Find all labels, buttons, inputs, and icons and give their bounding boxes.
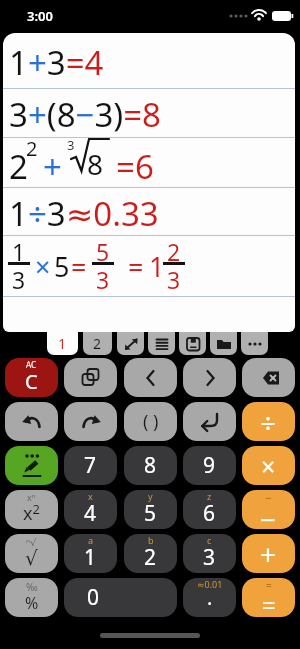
staticText: 1	[12, 236, 26, 262]
staticText: xⁿ	[27, 491, 36, 503]
staticText: x	[88, 490, 93, 502]
staticText: ×	[261, 449, 276, 483]
button[interactable]	[64, 402, 117, 441]
staticText: 1	[84, 543, 97, 570]
staticText: x2	[23, 500, 40, 525]
staticText: ‰	[26, 580, 38, 594]
button[interactable]: xⁿ	[5, 490, 58, 529]
staticText: −	[260, 500, 277, 524]
staticText: +	[260, 535, 277, 573]
staticText: =6	[116, 144, 154, 189]
button[interactable]	[117, 332, 144, 355]
button[interactable]: a	[64, 534, 117, 573]
button[interactable]: =	[242, 578, 295, 617]
staticText: =	[128, 248, 144, 285]
button[interactable]: −	[242, 490, 295, 529]
staticText: 2	[9, 144, 28, 189]
button[interactable]: x	[64, 490, 117, 529]
staticText: +	[43, 144, 62, 189]
button[interactable]: AC	[5, 358, 58, 397]
button[interactable]: y	[124, 490, 177, 529]
staticText: 8	[144, 451, 157, 480]
staticText: C	[25, 368, 38, 395]
staticText: 1÷3≈0.33	[9, 191, 159, 236]
staticText: %	[25, 592, 39, 614]
staticText: 3	[167, 264, 181, 291]
staticText: 6	[203, 499, 216, 526]
button[interactable]: ×	[242, 446, 295, 485]
staticText: .	[207, 584, 213, 611]
button[interactable]: c	[183, 534, 236, 573]
staticText: AC	[26, 359, 37, 370]
button[interactable]	[183, 402, 236, 441]
button[interactable]	[148, 332, 175, 355]
button[interactable]: ÷	[242, 402, 295, 441]
staticText: 2	[93, 334, 102, 353]
staticText: 3	[96, 264, 110, 291]
button[interactable]: ⁿ√	[5, 534, 58, 573]
staticText: 0	[87, 583, 100, 612]
button[interactable]	[241, 332, 268, 355]
button[interactable]: 9	[183, 446, 236, 485]
staticText: a	[88, 534, 94, 546]
staticText: ≈0.01	[197, 578, 223, 590]
staticText: 4	[84, 499, 97, 526]
button[interactable]: 7	[64, 446, 117, 485]
staticText: z	[207, 490, 212, 502]
staticText: 1	[149, 248, 165, 285]
staticText: 2	[26, 135, 38, 162]
staticText: =	[266, 578, 272, 592]
staticText: −	[265, 490, 272, 505]
button[interactable]: ≈0.01	[183, 578, 236, 617]
staticText: 1+3=4	[9, 40, 104, 85]
staticText: 5	[96, 236, 110, 262]
staticText: 8	[87, 145, 104, 183]
staticText: =	[71, 248, 87, 285]
staticText: 3	[12, 264, 26, 291]
button[interactable]: ‰	[5, 578, 58, 617]
staticText: ⁿ√	[26, 535, 37, 549]
button[interactable]	[242, 358, 295, 397]
button[interactable]: 0	[64, 578, 177, 617]
button[interactable]	[5, 446, 58, 485]
staticText: 7	[84, 451, 97, 480]
button[interactable]: 2	[83, 332, 112, 355]
button[interactable]	[210, 332, 237, 355]
button[interactable]: b	[124, 534, 177, 573]
staticText: 5	[54, 248, 70, 285]
staticText: 3	[203, 543, 216, 570]
staticText: y	[148, 490, 153, 502]
staticText: 9	[203, 451, 216, 480]
staticText: 2	[144, 543, 157, 570]
staticText: 2	[167, 236, 181, 262]
staticText: √	[25, 546, 38, 569]
staticText: 3	[67, 136, 75, 154]
staticText: c	[207, 534, 212, 546]
button[interactable]	[5, 402, 58, 441]
button[interactable]: 8	[124, 446, 177, 485]
staticText: 5	[144, 499, 157, 526]
button[interactable]	[64, 358, 117, 397]
button[interactable]: ( )	[124, 402, 177, 441]
button[interactable]: z	[183, 490, 236, 529]
staticText: ×	[35, 248, 51, 285]
staticText: =	[262, 588, 276, 613]
staticText: ÷	[260, 403, 277, 441]
button[interactable]: +	[242, 534, 295, 573]
staticText: b	[148, 534, 154, 546]
button[interactable]: 1	[47, 330, 78, 355]
button[interactable]	[179, 332, 206, 355]
staticText: ( )	[143, 409, 159, 434]
staticText: 3:00	[27, 7, 53, 25]
button[interactable]	[183, 358, 236, 397]
staticText: 1	[58, 334, 67, 353]
staticText: 3+(8−3)=8	[9, 92, 161, 137]
button[interactable]	[124, 358, 177, 397]
